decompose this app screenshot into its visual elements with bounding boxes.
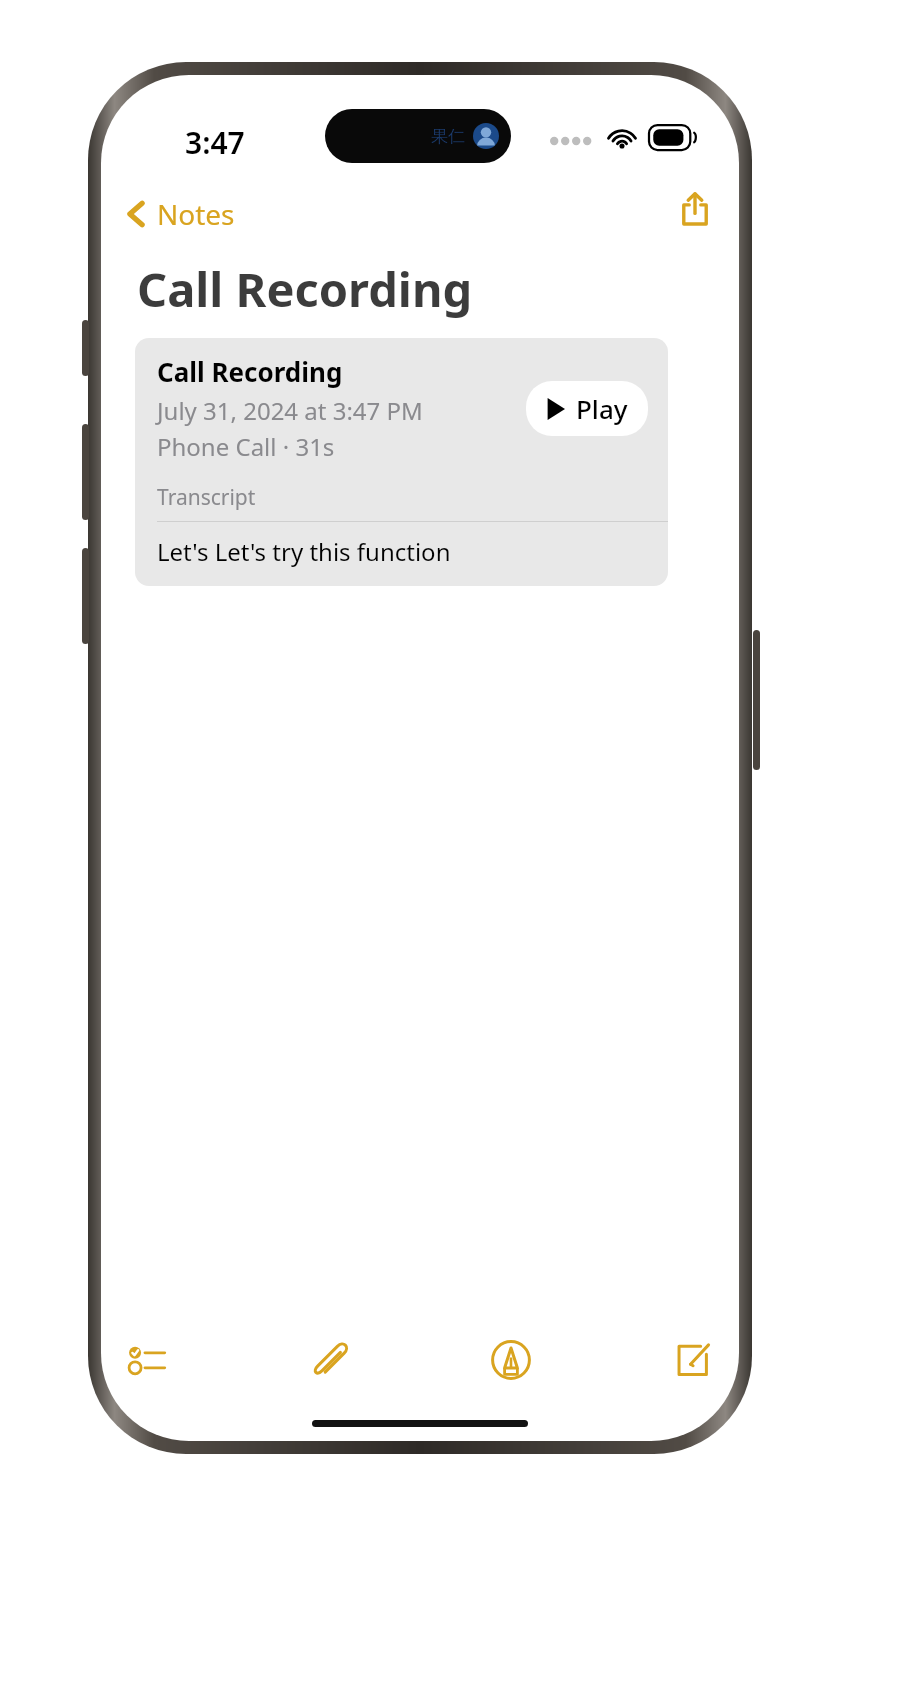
button[interactable]: New note xyxy=(659,1327,725,1393)
button[interactable]: Play xyxy=(526,381,648,436)
staticText: Call Recording xyxy=(157,354,343,389)
staticText: Notes xyxy=(157,195,235,233)
button[interactable]: Call Recording xyxy=(135,338,668,586)
staticText: Transcript xyxy=(157,483,256,512)
staticText: July 31, 2024 at 3:47 PM xyxy=(157,394,423,427)
staticText: Let's Let's try this function xyxy=(157,535,451,568)
button[interactable]: Share xyxy=(669,183,721,235)
staticText: Phone Call · 31s xyxy=(157,430,335,463)
button[interactable]: Notes xyxy=(115,187,245,241)
button[interactable]: Checklist xyxy=(115,1327,181,1393)
staticText: 果仁 xyxy=(431,126,465,147)
staticText: Play xyxy=(576,391,628,426)
staticText: Call Recording xyxy=(137,257,473,321)
button[interactable]: Markup xyxy=(478,1327,544,1393)
button[interactable]: Attach xyxy=(296,1327,362,1393)
staticText: 3:47 xyxy=(185,122,245,163)
